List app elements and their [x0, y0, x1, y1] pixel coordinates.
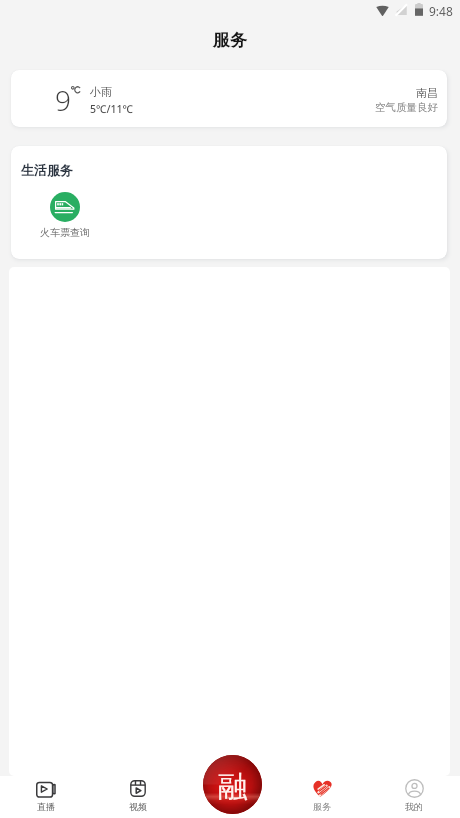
staticText: 南昌	[416, 86, 438, 100]
staticText: 直播	[37, 801, 55, 812]
button[interactable]: 我的	[368, 776, 460, 818]
button[interactable]: 视频	[92, 776, 184, 818]
staticText: 9	[55, 81, 71, 119]
button[interactable]: 融媒体首页	[203, 755, 262, 814]
staticText: 火车票查询	[40, 226, 90, 239]
staticText: 视频	[129, 801, 147, 812]
staticText: 9:48	[429, 3, 453, 19]
staticText: 生活服务	[21, 162, 73, 178]
staticText: 空气质量良好	[375, 101, 438, 114]
staticText: 5℃/11℃	[90, 102, 134, 116]
button[interactable]: 服务	[276, 776, 368, 818]
button[interactable]: 9	[11, 70, 447, 127]
staticText: 我的	[405, 801, 423, 812]
button[interactable]: 火车票查询	[32, 192, 98, 239]
button[interactable]: 直播	[0, 776, 92, 818]
staticText: 融	[218, 768, 248, 806]
staticText: 服务	[213, 30, 247, 51]
staticText: 小雨	[90, 85, 112, 99]
staticText: 服务	[313, 801, 331, 812]
